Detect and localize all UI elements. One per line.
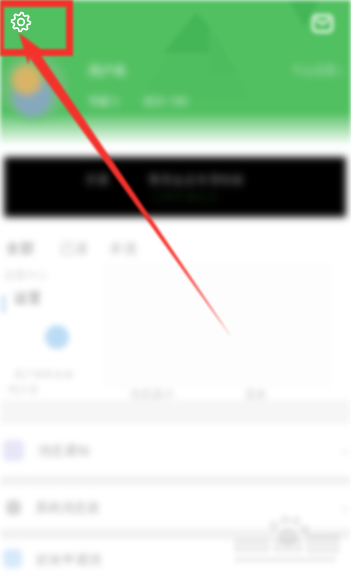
staticText: 全部	[6, 240, 34, 258]
button[interactable]: 消息通知	[0, 424, 351, 476]
staticText: 消息通知	[38, 442, 90, 458]
button[interactable]: 开通	[4, 157, 346, 217]
button[interactable]: Settings	[9, 10, 33, 34]
staticText: 已读	[60, 240, 88, 258]
staticText: 开通	[85, 172, 109, 187]
button[interactable]: Messages	[310, 11, 334, 35]
button[interactable]: 系统消息提	[0, 485, 351, 529]
staticText: 尊享会员专享特权	[148, 172, 244, 187]
staticText: 个人主页 ›	[292, 62, 343, 77]
button[interactable]: Settings	[9, 10, 33, 34]
button[interactable]: 好友申请消	[0, 539, 351, 578]
staticText: 等级 5	[88, 93, 120, 108]
staticText: 积分 180	[144, 93, 188, 108]
button[interactable]: 未读	[107, 239, 139, 259]
staticText: 设置	[14, 290, 42, 308]
staticText: 用户名	[88, 62, 127, 78]
button[interactable]: 全部	[4, 239, 36, 259]
staticText: 更多	[245, 387, 267, 401]
button[interactable]: 已读	[58, 239, 90, 259]
staticText: 用户资料名称	[14, 368, 74, 381]
staticText: 好友申请消	[36, 551, 101, 567]
staticText: 未读	[109, 240, 137, 258]
staticText: 信息提示	[130, 387, 174, 401]
staticText: 系统消息提	[35, 499, 100, 515]
staticText: 设置中心	[4, 268, 48, 282]
